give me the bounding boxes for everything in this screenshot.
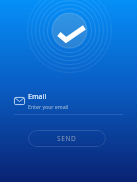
other: Email xyxy=(14,97,25,105)
staticText: Email xyxy=(28,92,47,102)
button[interactable]: SEND xyxy=(28,130,106,147)
staticText: SEND xyxy=(57,134,77,143)
staticText: Enter your email xyxy=(28,103,69,110)
